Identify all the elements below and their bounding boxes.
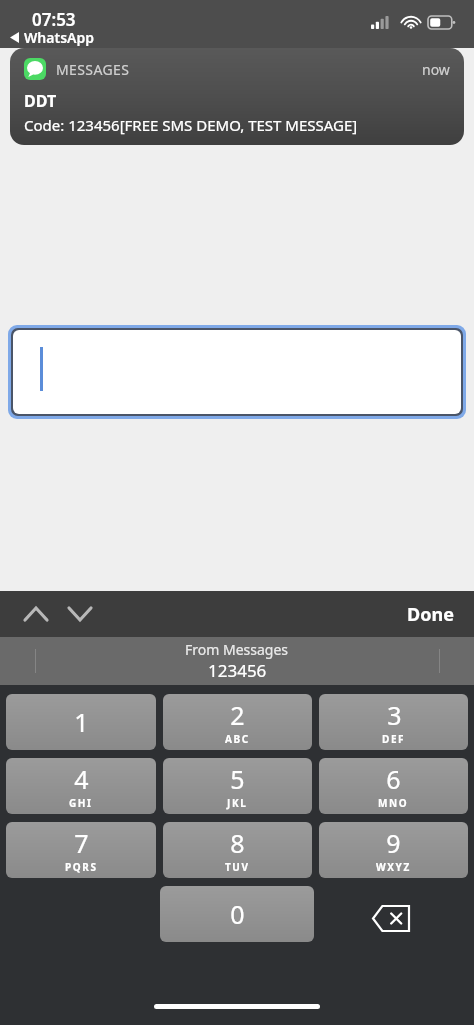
button[interactable]: 9 <box>319 822 468 878</box>
staticText: 7 <box>74 826 89 860</box>
staticText: 4 <box>74 762 89 796</box>
button[interactable] <box>13 330 461 414</box>
staticText: 3 <box>387 698 402 732</box>
staticText: TUV <box>225 860 250 874</box>
staticText: 1 <box>74 705 89 739</box>
staticText: MESSAGES <box>56 60 130 79</box>
staticText: DEF <box>382 732 406 746</box>
staticText: 07:53 <box>32 8 76 31</box>
button[interactable]: Done <box>395 594 466 635</box>
staticText: WXYZ <box>376 860 411 874</box>
staticText: 0 <box>230 897 245 931</box>
button[interactable]: 0 <box>160 886 314 942</box>
staticText: 123456 <box>208 659 267 682</box>
staticText: From Messages <box>185 640 289 659</box>
button[interactable]: 4 <box>6 758 156 814</box>
staticText: Code: 123456[FREE SMS DEMO, TEST MESSAGE… <box>24 115 358 135</box>
button[interactable]: MESSAGES <box>10 48 464 145</box>
button[interactable]: 6 <box>319 758 468 814</box>
staticText: GHI <box>69 796 93 810</box>
staticText: MNO <box>378 796 409 810</box>
button[interactable]: 3 <box>319 694 468 750</box>
staticText: DDT <box>24 90 57 112</box>
button[interactable]: 5 <box>163 758 312 814</box>
staticText: PQRS <box>65 860 98 874</box>
staticText: 6 <box>386 762 401 796</box>
staticText: WhatsApp <box>24 28 94 47</box>
staticText: 2 <box>230 698 245 732</box>
staticText: 8 <box>230 826 245 860</box>
button[interactable]: 8 <box>163 822 312 878</box>
staticText: JKL <box>227 796 248 810</box>
staticText: 5 <box>230 762 245 796</box>
button[interactable]: 1 <box>6 694 156 750</box>
button[interactable]: Previous field <box>14 592 58 636</box>
button[interactable]: 7 <box>6 822 156 878</box>
button[interactable]: From Messages <box>33 637 441 685</box>
button[interactable]: 2 <box>163 694 312 750</box>
button[interactable]: Backspace <box>359 886 423 950</box>
staticText: now <box>422 60 450 79</box>
staticText: ABC <box>225 732 250 746</box>
button[interactable]: Next field <box>58 592 102 636</box>
staticText: Done <box>407 602 454 627</box>
staticText: 9 <box>386 826 401 860</box>
